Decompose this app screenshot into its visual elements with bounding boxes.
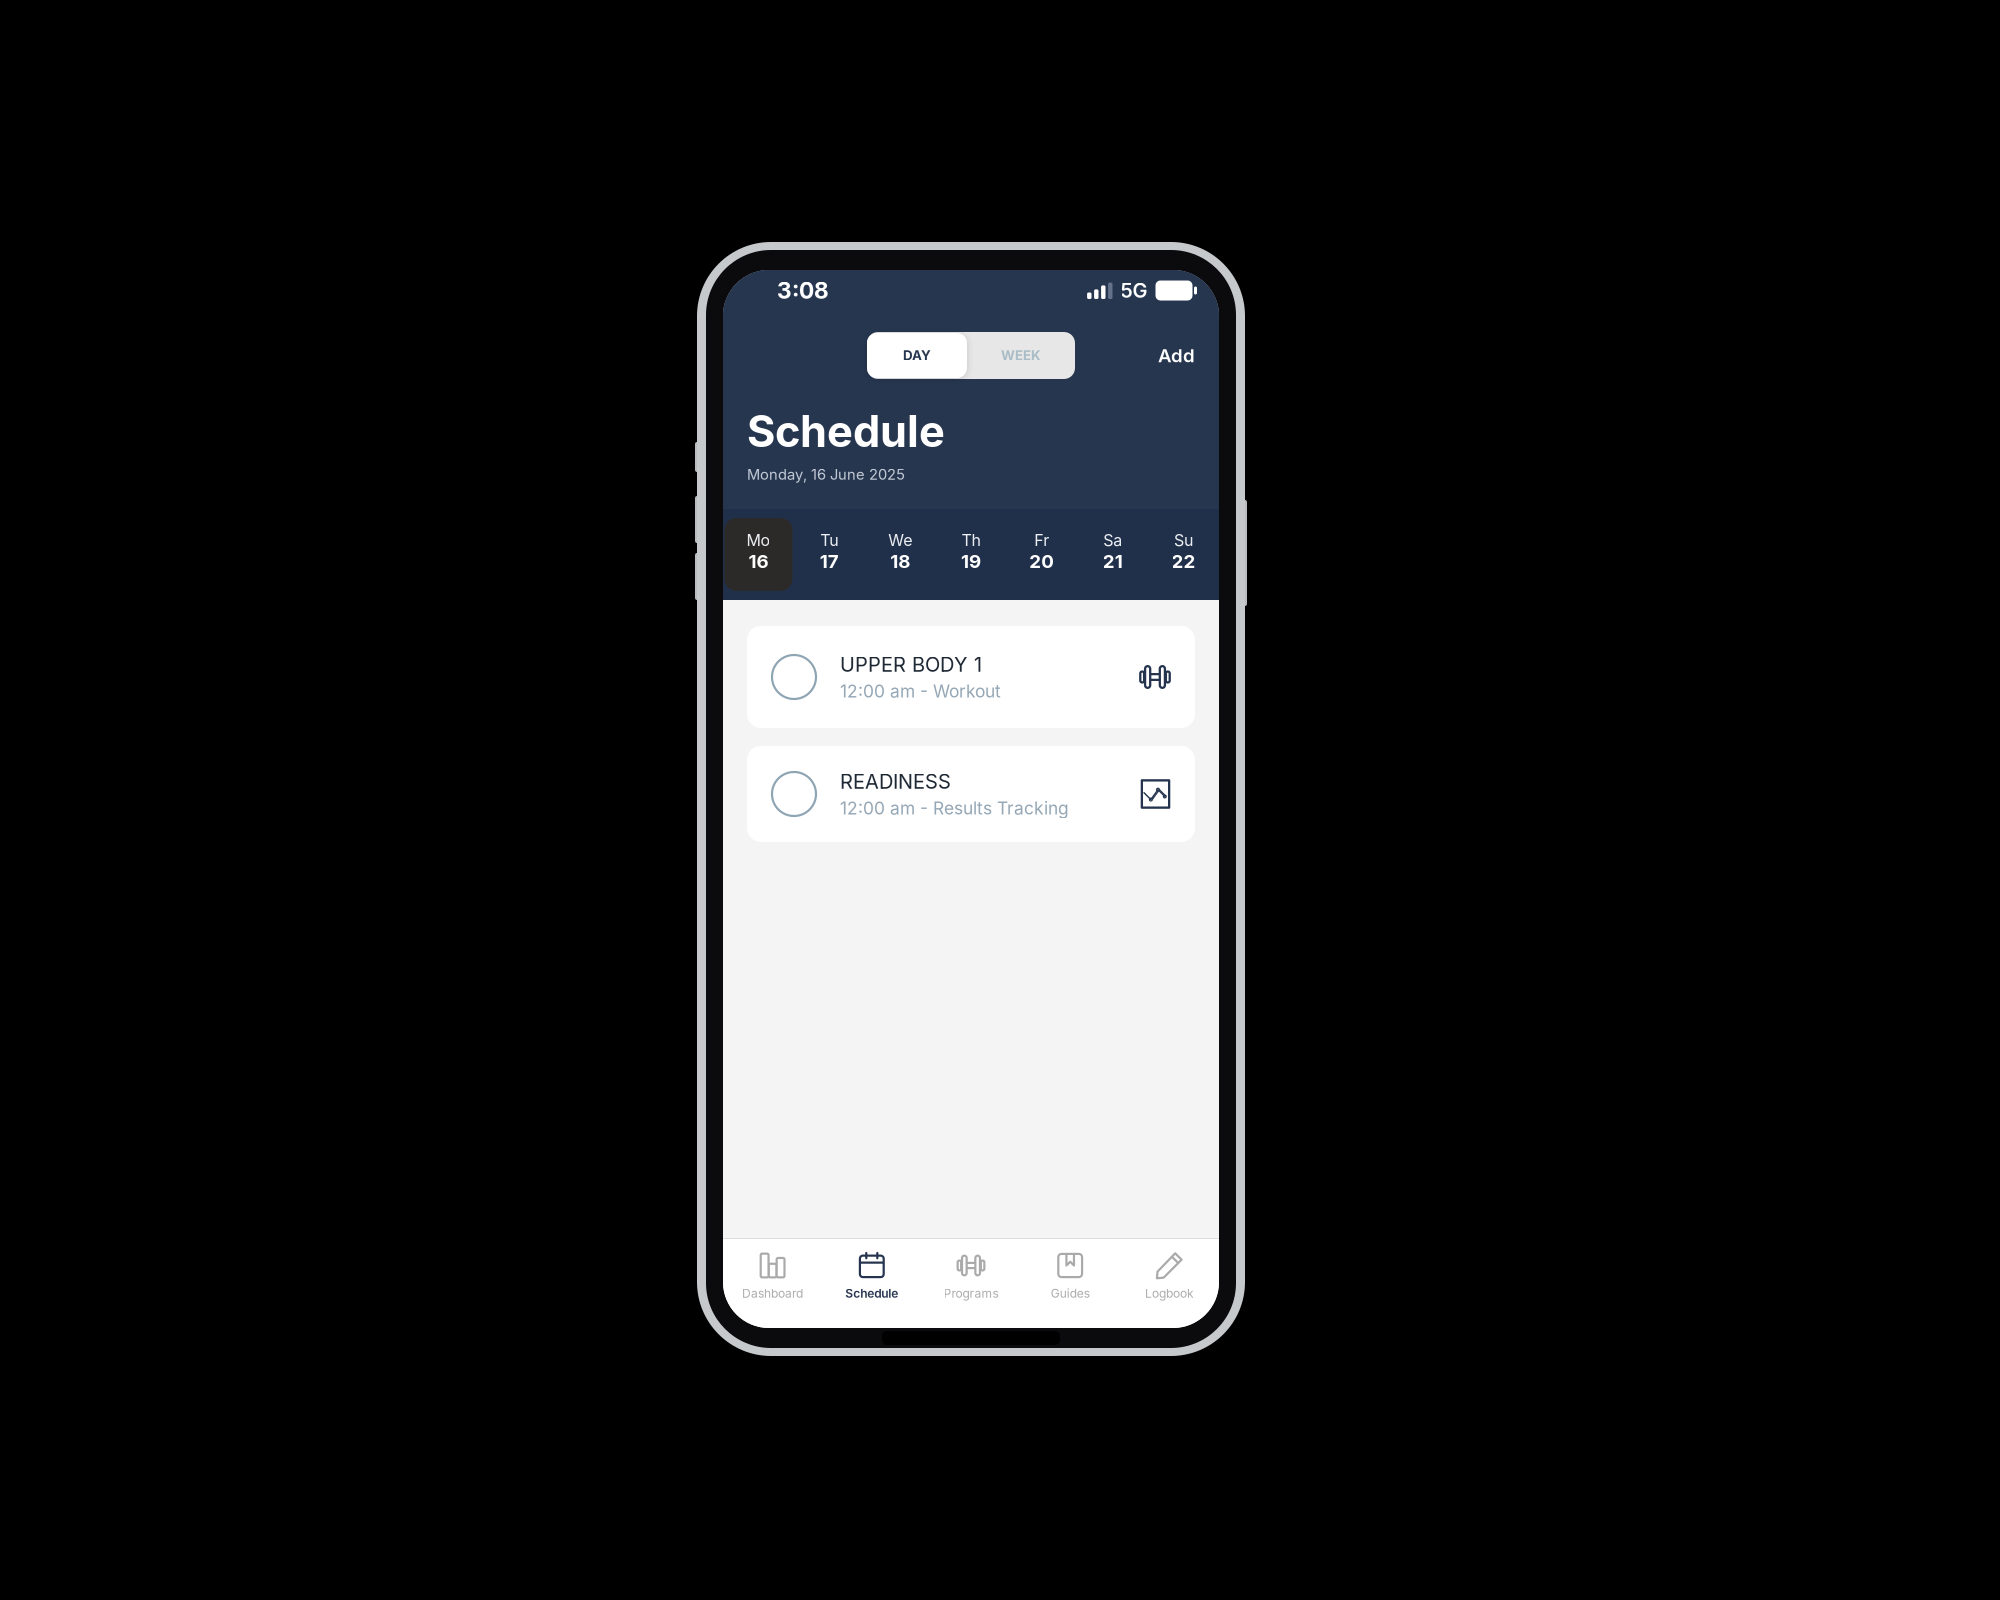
staticText: Th [961, 530, 980, 550]
staticText: WEEK [1001, 347, 1041, 363]
staticText: Programs [943, 1286, 998, 1300]
staticText: 21 [1103, 550, 1123, 572]
staticText: READINESS [840, 769, 951, 794]
button[interactable]: Fr [1006, 509, 1077, 600]
staticText: 22 [1172, 550, 1196, 572]
staticText: Su [1174, 530, 1193, 550]
button[interactable]: DAY [867, 332, 967, 379]
staticText: UPPER BODY 1 [840, 652, 982, 677]
button[interactable]: Sa [1077, 509, 1148, 600]
staticText: Schedule [747, 405, 945, 457]
staticText: We [888, 530, 912, 550]
staticText: Sa [1103, 530, 1122, 550]
staticText: Add [1158, 344, 1195, 367]
staticText: 3:08 [777, 277, 829, 304]
button[interactable]: READINESS [747, 746, 1195, 842]
staticText: Fr [1034, 530, 1049, 550]
staticText: Dashboard [742, 1286, 803, 1300]
button[interactable]: Tu [794, 509, 865, 600]
staticText: 5G [1120, 278, 1147, 303]
staticText: 12:00 am - Workout [840, 681, 1001, 702]
button[interactable]: WEEK [967, 332, 1075, 379]
staticText: DAY [903, 347, 931, 363]
staticText: 19 [961, 550, 981, 572]
button[interactable]: UPPER BODY 1 [747, 626, 1195, 728]
button[interactable]: Schedule [822, 1239, 921, 1328]
button[interactable]: We [865, 509, 936, 600]
button[interactable]: Guides [1021, 1239, 1120, 1328]
button[interactable]: Mo [723, 509, 794, 600]
staticText: 16 [748, 550, 768, 572]
staticText: 12:00 am - Results Tracking [840, 798, 1069, 819]
staticText: 17 [820, 550, 839, 572]
staticText: 20 [1029, 550, 1054, 572]
button[interactable]: Add [1150, 332, 1203, 379]
staticText: Logbook [1145, 1286, 1194, 1300]
button[interactable]: Dashboard [723, 1239, 822, 1328]
button[interactable]: Programs [921, 1239, 1021, 1328]
staticText: Tu [820, 530, 838, 550]
staticText: 18 [890, 550, 910, 572]
staticText: Schedule [845, 1286, 898, 1300]
staticText: Monday, 16 June 2025 [747, 465, 905, 483]
staticText: Mo [746, 530, 770, 550]
button[interactable]: Logbook [1120, 1239, 1219, 1328]
button[interactable]: Th [936, 509, 1006, 600]
staticText: Guides [1051, 1286, 1090, 1300]
button[interactable]: Su [1148, 509, 1219, 600]
